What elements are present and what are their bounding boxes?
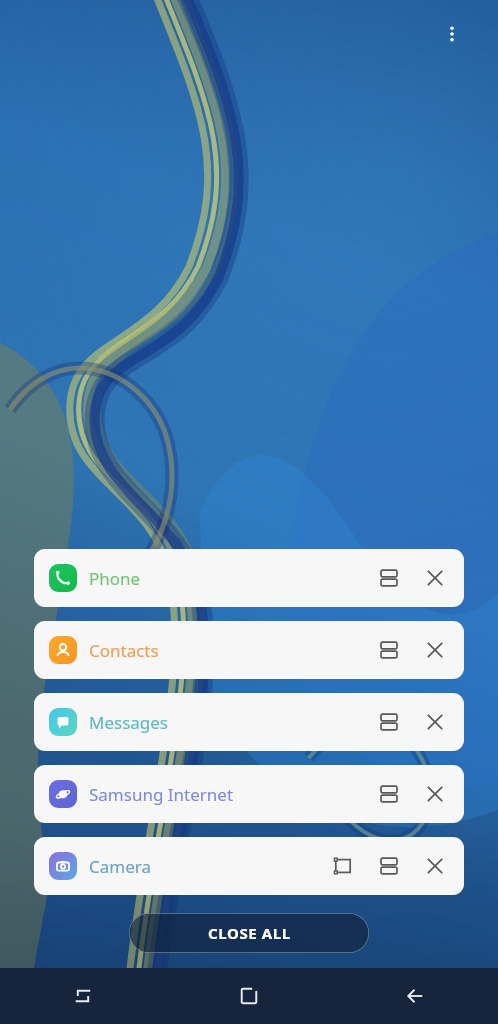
button[interactable]: Back	[332, 968, 498, 1024]
button[interactable]: Home	[166, 968, 332, 1024]
staticText: Contacts	[89, 639, 159, 662]
button[interactable]: Pop-up view	[322, 845, 364, 887]
button[interactable]: Close Messages	[414, 701, 456, 743]
button[interactable]: Camera	[34, 837, 464, 895]
staticText: Camera	[89, 855, 151, 878]
button[interactable]: Contacts	[34, 621, 464, 679]
button[interactable]: Samsung Internet	[34, 765, 464, 823]
button[interactable]: Close Phone	[414, 557, 456, 599]
button[interactable]: More options	[428, 10, 476, 58]
button[interactable]: Messages	[34, 693, 464, 751]
button[interactable]: Close Contacts	[414, 629, 456, 671]
staticText: Samsung Internet	[89, 783, 234, 806]
button[interactable]: Recents	[0, 968, 166, 1024]
button[interactable]: Split screen view	[368, 773, 410, 815]
button[interactable]: Close Camera	[414, 845, 456, 887]
staticText: CLOSE ALL	[208, 923, 291, 943]
staticText: Phone	[89, 567, 141, 590]
button[interactable]: Close Samsung Internet	[414, 773, 456, 815]
button[interactable]: CLOSE ALL	[129, 913, 369, 953]
button[interactable]: Split screen view	[368, 701, 410, 743]
button[interactable]: Split screen view	[368, 629, 410, 671]
staticText: Messages	[89, 711, 169, 734]
button[interactable]: Phone	[34, 549, 464, 607]
button[interactable]: Split screen view	[368, 845, 410, 887]
button[interactable]: Split screen view	[368, 557, 410, 599]
